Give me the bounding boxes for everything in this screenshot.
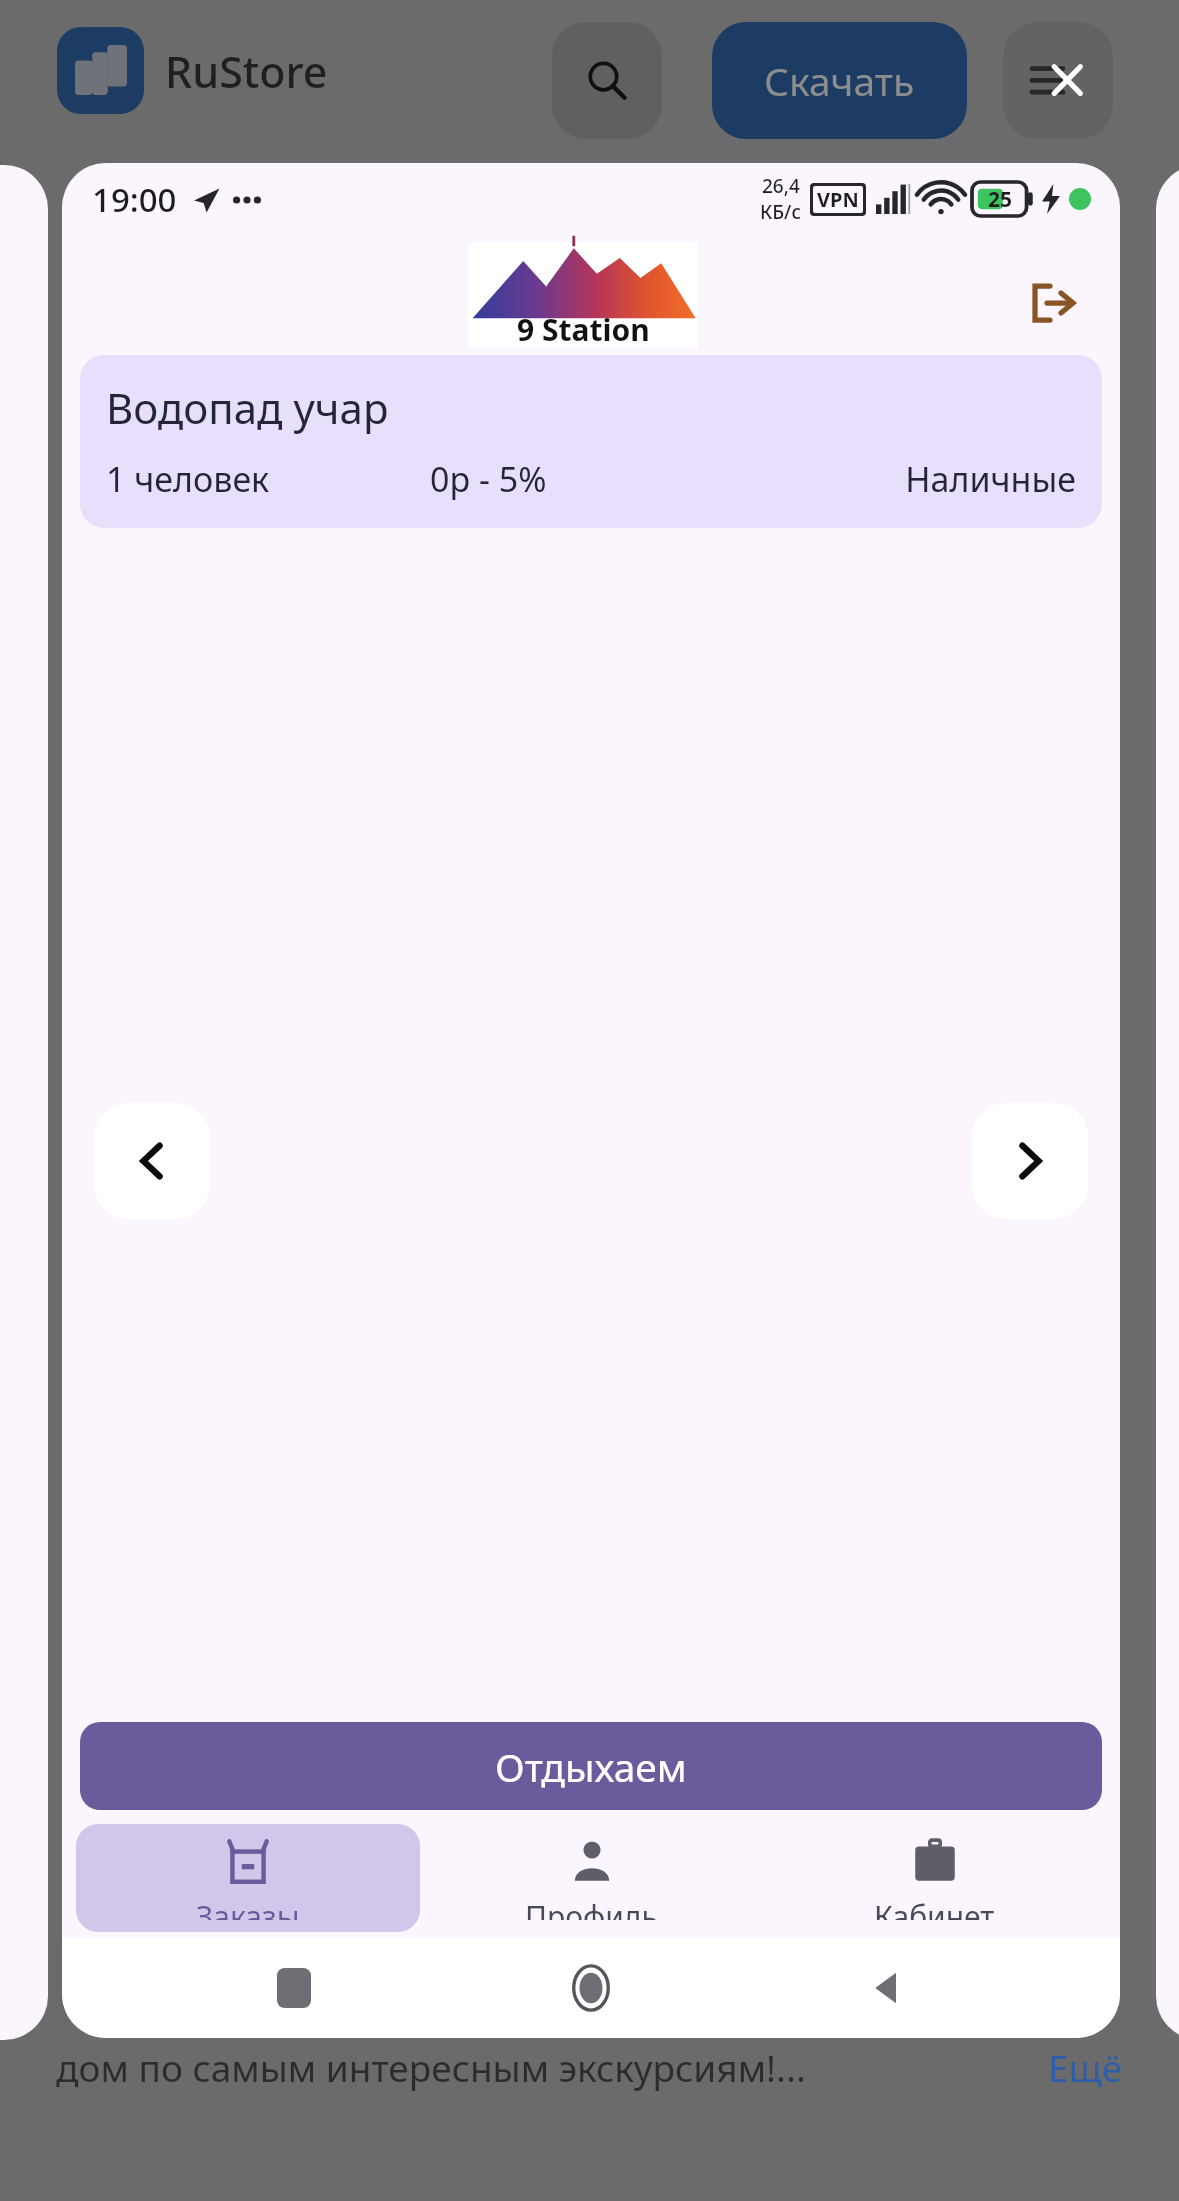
button[interactable]: Back <box>856 1956 920 2020</box>
staticText: 1 человек <box>106 456 430 502</box>
staticText: Заказы <box>196 1896 300 1920</box>
button[interactable]: Next <box>972 1103 1088 1219</box>
button[interactable]: Водопад учар <box>80 355 1102 528</box>
staticText: КБ/с <box>760 199 801 225</box>
staticText: VPN <box>817 186 859 213</box>
button[interactable]: Recents <box>262 1956 326 2020</box>
staticText: Отдыхаем <box>495 1740 687 1793</box>
button[interactable]: Log out <box>1016 267 1088 339</box>
staticText: Наличные <box>753 456 1076 502</box>
staticText: Водопад учар <box>106 379 389 436</box>
button[interactable]: Close menu <box>1003 22 1113 139</box>
staticText: Профиль <box>525 1896 658 1920</box>
button[interactable]: Отдыхаем <box>80 1722 1102 1810</box>
staticText: дом по самым интересным экскурсиям!... <box>56 2042 1048 2092</box>
staticText: 9 Station <box>517 309 650 350</box>
staticText: RuStore <box>165 42 328 101</box>
button[interactable]: RuStore <box>57 27 144 114</box>
button[interactable]: Профиль <box>420 1824 763 1932</box>
button[interactable]: Кабинет <box>763 1824 1106 1932</box>
staticText: 26,4 <box>762 173 800 199</box>
button[interactable]: Ещё <box>1048 2042 1123 2092</box>
button[interactable]: Search <box>552 22 662 139</box>
button[interactable]: Скачать <box>712 22 967 139</box>
staticText: 25 <box>988 185 1013 214</box>
staticText: 0р - 5% <box>430 456 753 502</box>
button[interactable]: Previous <box>94 1103 210 1219</box>
staticText: Кабинет <box>874 1896 995 1920</box>
button[interactable]: Заказы <box>76 1824 420 1932</box>
staticText: 19:00 <box>92 177 177 222</box>
button[interactable]: Home <box>559 1956 623 2020</box>
staticText: Скачать <box>764 54 915 107</box>
